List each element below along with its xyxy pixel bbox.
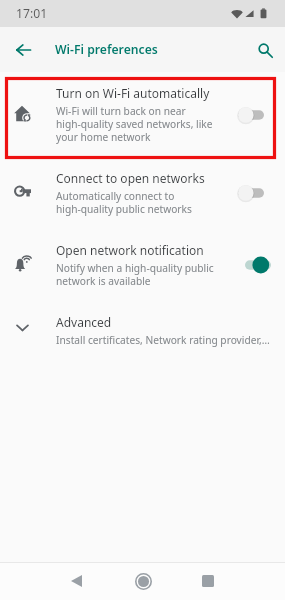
staticText: Advanced	[56, 314, 112, 330]
staticText: Automatically connect to high-quality pu…	[56, 189, 236, 216]
button[interactable]: Connect to open networks	[0, 157, 285, 229]
staticText: Wi-Fi preferences	[55, 41, 158, 58]
staticText: 17:01	[16, 5, 48, 22]
staticText: Connect to open networks	[56, 170, 205, 186]
button[interactable]: Turn on Wi-Fi automatically	[0, 72, 285, 157]
button[interactable]: Advanced	[0, 301, 285, 360]
button[interactable]: Home	[123, 562, 163, 600]
button[interactable]: Recents	[188, 562, 228, 600]
button[interactable]: Switch off	[238, 184, 271, 202]
staticText: Notify when a high-quality public networ…	[56, 261, 236, 288]
button[interactable]: Open network notification	[0, 229, 285, 301]
staticText: Open network notification	[56, 242, 204, 258]
staticText: Wi-Fi will turn back on near high-qualit…	[56, 104, 236, 144]
button[interactable]: Back	[7, 34, 39, 66]
button[interactable]: Search	[249, 34, 281, 66]
staticText: Turn on Wi-Fi automatically	[56, 85, 210, 101]
button[interactable]: Switch off	[238, 106, 271, 124]
staticText: Install certificates, Network rating pro…	[56, 333, 270, 347]
button[interactable]: Back	[56, 562, 96, 600]
button[interactable]: Switch on	[238, 256, 271, 274]
